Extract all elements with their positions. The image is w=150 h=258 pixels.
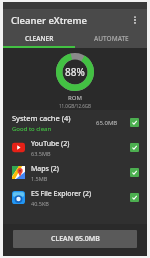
button[interactable]: AUTOMATE bbox=[75, 31, 147, 46]
button[interactable]: Selected bbox=[130, 168, 139, 177]
button[interactable]: YouTube (2) bbox=[3, 135, 147, 160]
staticText: 40.5KB bbox=[31, 200, 49, 207]
button[interactable]: More options bbox=[127, 12, 143, 28]
staticText: Cleaner eXtreme bbox=[11, 14, 127, 27]
staticText: 88% bbox=[65, 65, 85, 79]
staticText: CLEAN 65.0MB bbox=[51, 234, 100, 244]
staticText: 63.5MB bbox=[31, 150, 51, 157]
button[interactable]: Selected bbox=[130, 118, 139, 127]
button[interactable]: CLEAN 65.0MB bbox=[13, 230, 137, 248]
button[interactable]: ES File Explorer (2) bbox=[3, 185, 147, 210]
staticText: AUTOMATE bbox=[94, 34, 129, 43]
staticText: ROM bbox=[68, 94, 83, 102]
staticText: Good to clean bbox=[12, 125, 52, 133]
staticText: System cache (4) bbox=[12, 113, 71, 123]
button[interactable]: Selected bbox=[130, 143, 139, 152]
staticText: 1.5MB bbox=[31, 175, 48, 182]
staticText: 11.0GB/12.6GB bbox=[59, 103, 91, 109]
staticText: CLEANER bbox=[25, 34, 54, 43]
staticText: 65.0MB bbox=[96, 119, 118, 127]
staticText: YouTube (2) bbox=[31, 139, 70, 149]
button[interactable]: Selected bbox=[130, 193, 139, 202]
staticText: ES File Explorer (2) bbox=[31, 189, 92, 199]
button[interactable]: System cache (4) bbox=[3, 110, 147, 135]
staticText: Maps (2) bbox=[31, 164, 59, 174]
button[interactable]: CLEANER bbox=[3, 31, 75, 46]
button[interactable]: Maps (2) bbox=[3, 160, 147, 185]
